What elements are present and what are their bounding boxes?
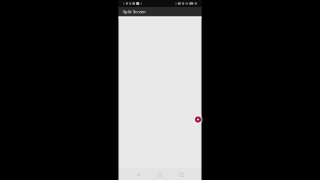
button[interactable]: Home (153, 168, 167, 180)
button[interactable]: Recents (174, 168, 188, 180)
button[interactable]: Record (193, 114, 203, 124)
staticText: Split Screen (123, 9, 146, 14)
button[interactable]: Back (131, 168, 145, 180)
